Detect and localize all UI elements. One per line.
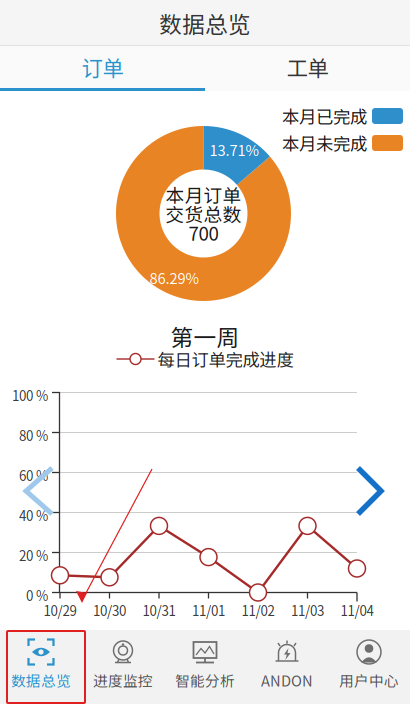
- staticText: 本月订单: [165, 181, 241, 208]
- staticText: 本月已完成: [282, 103, 367, 129]
- staticText: 10/31: [142, 600, 175, 620]
- staticText: 11/02: [241, 600, 274, 620]
- staticText: 智能分析: [175, 669, 235, 691]
- staticText: 进度监控: [93, 669, 153, 691]
- staticText: 本月未完成: [282, 130, 367, 156]
- staticText: 工单: [286, 52, 328, 82]
- button[interactable]: ANDON: [246, 630, 328, 704]
- staticText: ANDON: [261, 669, 313, 691]
- staticText: 数据总览: [159, 7, 251, 39]
- staticText: 11/04: [340, 600, 373, 620]
- staticText: 13.71%: [209, 139, 259, 160]
- button[interactable]: 订单: [0, 46, 205, 88]
- staticText: 交货总数: [165, 200, 241, 227]
- button[interactable]: 智能分析: [164, 630, 246, 704]
- staticText: 100 %: [12, 385, 48, 405]
- staticText: 40 %: [19, 505, 48, 525]
- staticText: 0 %: [26, 585, 48, 605]
- staticText: 700: [188, 219, 218, 246]
- button[interactable]: 工单: [205, 46, 410, 88]
- staticText: 10/29: [43, 600, 76, 620]
- button[interactable]: 数据总览: [0, 630, 82, 704]
- staticText: 用户中心: [339, 669, 399, 691]
- staticText: 订单: [81, 52, 123, 82]
- staticText: 60 %: [19, 465, 48, 485]
- staticText: 第一周: [170, 320, 239, 352]
- staticText: 数据总览: [11, 669, 71, 691]
- button[interactable]: 进度监控: [82, 630, 164, 704]
- staticText: 10/30: [93, 600, 126, 620]
- button[interactable]: 用户中心: [328, 630, 410, 704]
- staticText: 20 %: [19, 545, 48, 565]
- staticText: 86.29%: [149, 267, 199, 288]
- staticText: 11/03: [291, 600, 324, 620]
- staticText: 每日订单完成进度: [157, 346, 293, 372]
- staticText: 80 %: [19, 425, 48, 445]
- staticText: 11/01: [192, 600, 225, 620]
